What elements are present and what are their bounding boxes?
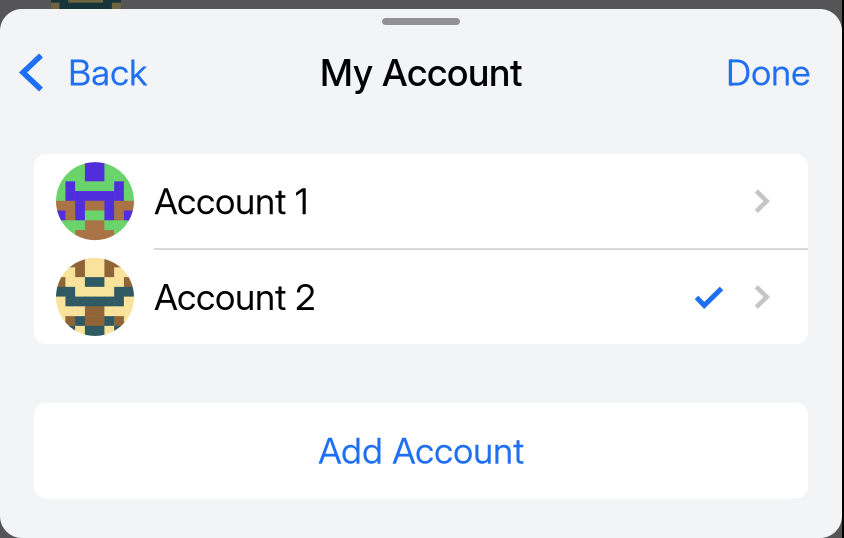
- staticText: Account 2: [154, 275, 316, 319]
- button[interactable]: Account 2: [34, 250, 808, 344]
- staticText: Account 1: [154, 179, 308, 223]
- button[interactable]: Account 1: [34, 154, 808, 248]
- button[interactable]: Back: [0, 51, 148, 94]
- button[interactable]: Done: [726, 51, 842, 94]
- staticText: My Account: [320, 50, 522, 95]
- staticText: Add Account: [318, 429, 524, 472]
- staticText: Done: [726, 51, 811, 94]
- staticText: Back: [68, 51, 148, 94]
- button[interactable]: Add Account: [0, 403, 842, 499]
